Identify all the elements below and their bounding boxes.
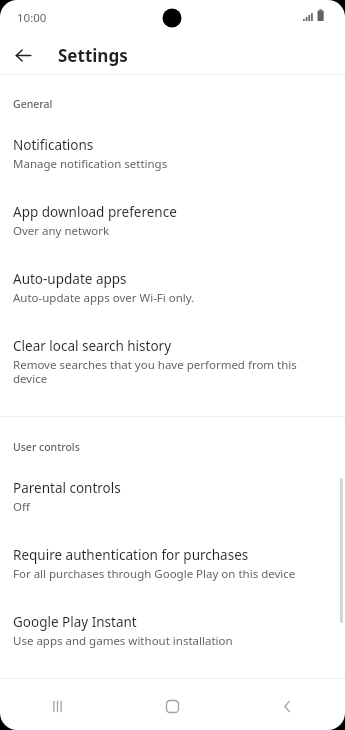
- staticText: Auto-update apps over Wi-Fi only.: [13, 290, 195, 306]
- button[interactable]: Back: [8, 40, 38, 70]
- button[interactable]: Require authentication for purchases: [0, 515, 345, 582]
- staticText: Google Play Instant: [13, 613, 137, 631]
- staticText: General: [13, 97, 345, 111]
- staticText: Use apps and games without installation: [13, 633, 233, 649]
- button[interactable]: Home: [115, 682, 230, 730]
- button[interactable]: Recent apps: [0, 682, 115, 730]
- button[interactable]: Google Play Instant: [0, 582, 345, 649]
- staticText: User controls: [13, 440, 345, 454]
- staticText: Auto-update apps: [13, 270, 127, 288]
- staticText: 10:00: [17, 10, 47, 26]
- button[interactable]: Auto-update apps: [0, 239, 345, 306]
- button[interactable]: Notifications: [0, 111, 345, 172]
- staticText: Clear local search history: [13, 337, 172, 355]
- staticText: Remove searches that you have performed …: [13, 357, 329, 386]
- button[interactable]: Clear local search history: [0, 306, 345, 386]
- button[interactable]: App download preference: [0, 172, 345, 239]
- staticText: App download preference: [13, 203, 177, 221]
- staticText: Notifications: [13, 136, 94, 154]
- staticText: Over any network: [13, 223, 110, 239]
- staticText: Settings: [58, 44, 128, 67]
- staticText: Parental controls: [13, 479, 121, 497]
- staticText: For all purchases through Google Play on…: [13, 566, 296, 582]
- button[interactable]: Back: [230, 682, 345, 730]
- button[interactable]: Parental controls: [0, 454, 345, 515]
- staticText: Require authentication for purchases: [13, 546, 249, 564]
- staticText: Manage notification settings: [13, 156, 168, 172]
- staticText: Off: [13, 499, 30, 515]
